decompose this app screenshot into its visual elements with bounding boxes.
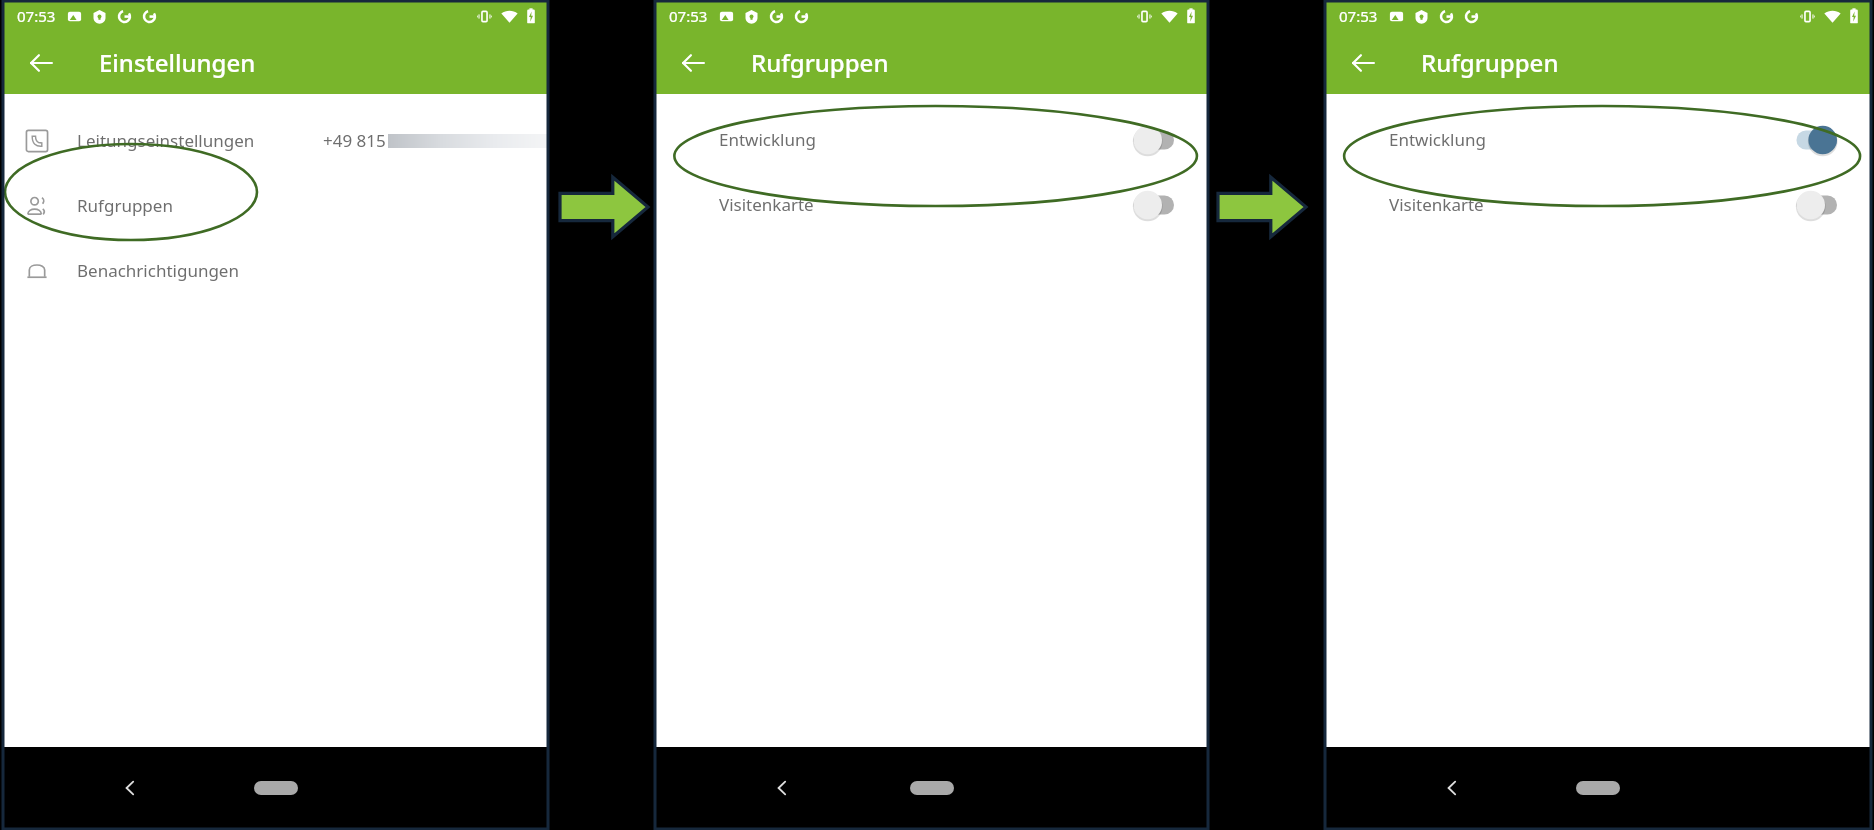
- staticText: Rufgruppen: [1421, 46, 1559, 79]
- button[interactable]: Back: [1339, 39, 1387, 87]
- button[interactable]: Back: [75, 747, 185, 829]
- staticText: 07:53: [1339, 6, 1378, 26]
- button[interactable]: Home: [1558, 768, 1638, 808]
- staticText: Rufgruppen: [751, 46, 889, 79]
- staticText: 07:53: [669, 6, 708, 26]
- button[interactable]: Home: [236, 768, 316, 808]
- staticText: Rufgruppen: [77, 194, 173, 217]
- staticText: Einstellungen: [99, 46, 256, 79]
- button[interactable]: Back: [17, 39, 65, 87]
- staticText: Entwicklung: [1389, 128, 1486, 151]
- staticText: Visitenkarte: [719, 193, 814, 216]
- staticText: 07:53: [17, 6, 56, 26]
- button[interactable]: Toggle Entwicklung: [1122, 123, 1174, 157]
- button[interactable]: Entwicklung: [655, 107, 1208, 172]
- button[interactable]: Visitenkarte: [655, 172, 1208, 237]
- button[interactable]: Toggle Entwicklung: [1785, 123, 1837, 157]
- button[interactable]: Leitungseinstellungen: [3, 108, 548, 173]
- button[interactable]: Back: [1397, 747, 1507, 829]
- button[interactable]: Entwicklung: [1325, 107, 1871, 172]
- staticText: Entwicklung: [719, 128, 816, 151]
- button[interactable]: Benachrichtigungen: [3, 238, 548, 303]
- staticText: Benachrichtigungen: [77, 259, 239, 282]
- button[interactable]: Rufgruppen: [3, 173, 548, 238]
- button[interactable]: Home: [892, 768, 972, 808]
- button[interactable]: Back: [727, 747, 837, 829]
- button[interactable]: Visitenkarte: [1325, 172, 1871, 237]
- staticText: Visitenkarte: [1389, 193, 1484, 216]
- staticText: +49 815: [323, 129, 386, 152]
- button[interactable]: Back: [669, 39, 717, 87]
- staticText: Leitungseinstellungen: [77, 129, 255, 152]
- button[interactable]: Toggle Visitenkarte: [1785, 188, 1837, 222]
- button[interactable]: Toggle Visitenkarte: [1122, 188, 1174, 222]
